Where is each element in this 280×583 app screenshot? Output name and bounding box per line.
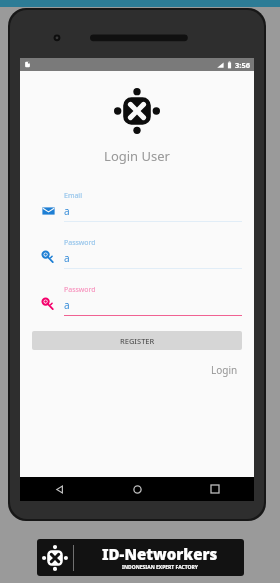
staticText: Login User xyxy=(104,147,170,165)
staticText: INDONESIAN EXPERT FACTORY xyxy=(122,564,198,571)
button[interactable]: Recent apps xyxy=(176,477,254,501)
staticText: ID-Networkers xyxy=(102,544,218,564)
staticText: a xyxy=(64,298,70,312)
button[interactable]: Login xyxy=(207,359,242,381)
button[interactable]: Email xyxy=(32,191,242,222)
staticText: a xyxy=(64,204,70,218)
staticText: Login xyxy=(211,363,238,377)
button[interactable]: Password xyxy=(32,285,242,316)
button[interactable]: REGISTER xyxy=(32,331,242,350)
staticText: Email xyxy=(64,191,82,201)
staticText: Password xyxy=(64,285,96,295)
button[interactable]: Home xyxy=(98,477,176,501)
staticText: a xyxy=(64,251,70,265)
staticText: REGISTER xyxy=(120,336,155,346)
button[interactable]: Password xyxy=(32,238,242,269)
staticText: 3:56 xyxy=(235,60,250,70)
staticText: Password xyxy=(64,238,96,248)
button[interactable]: Back xyxy=(20,477,98,501)
